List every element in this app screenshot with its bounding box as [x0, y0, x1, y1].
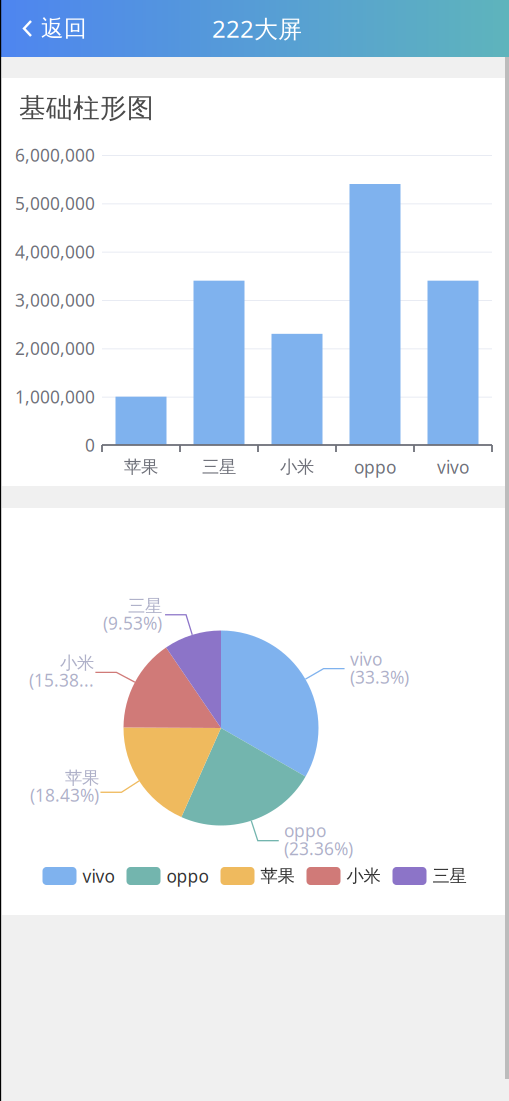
staticText: 5,000,000 [15, 192, 95, 215]
staticText: oppo [354, 455, 396, 478]
staticText: 三星 [432, 865, 466, 887]
staticText: 苹果 [260, 865, 294, 887]
staticText: (15.38... [29, 669, 94, 692]
staticText: (9.53%) [103, 612, 162, 635]
staticText: 苹果 [124, 456, 158, 478]
staticText: 苹果 [65, 767, 99, 789]
staticText: 3,000,000 [15, 288, 95, 311]
button[interactable]: 苹果 [220, 865, 294, 887]
button[interactable]: oppo [126, 864, 208, 887]
staticText: 小米 [60, 652, 94, 674]
staticText: 6,000,000 [15, 143, 95, 166]
button[interactable]: 返回 [0, 0, 101, 57]
staticText: (23.36%) [284, 837, 353, 860]
staticText: 2,000,000 [15, 337, 95, 360]
staticText: 三星 [202, 456, 236, 478]
button[interactable]: 三星 [392, 865, 466, 887]
staticText: oppo [284, 819, 326, 842]
button[interactable]: 小米 [306, 865, 380, 887]
staticText: 222大屏 [212, 13, 302, 44]
staticText: 小米 [346, 865, 380, 887]
staticText: (33.3%) [350, 665, 409, 688]
staticText: vivo [82, 864, 114, 887]
staticText: vivo [350, 647, 382, 670]
staticText: oppo [166, 864, 208, 887]
staticText: 返回 [41, 15, 87, 42]
staticText: 小米 [280, 456, 314, 478]
staticText: 三星 [128, 595, 162, 617]
staticText: 0 [85, 433, 95, 456]
staticText: (18.43%) [30, 784, 99, 807]
staticText: 基础柱形图 [19, 92, 154, 124]
staticText: vivo [437, 455, 469, 478]
button[interactable]: vivo [42, 864, 114, 887]
staticText: 4,000,000 [15, 240, 95, 263]
staticText: 1,000,000 [15, 385, 95, 408]
